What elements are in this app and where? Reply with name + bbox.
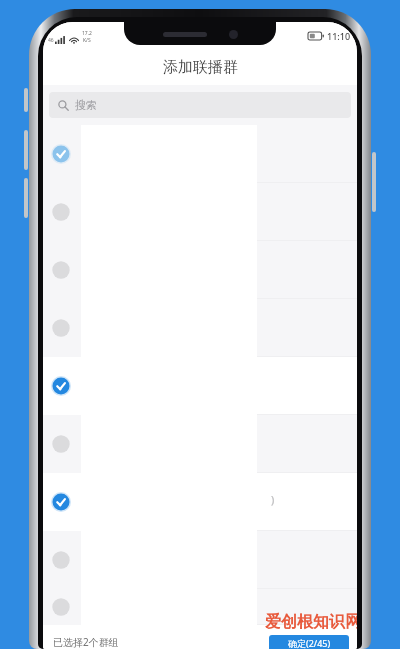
other: Selected group	[51, 376, 71, 396]
staticText: )	[271, 492, 275, 507]
staticText: 添加联播群	[163, 58, 238, 77]
staticText: 46	[48, 37, 54, 44]
other: Unselected group	[51, 318, 71, 338]
button[interactable]: 确定(2/45)	[269, 635, 349, 649]
button[interactable]: Unselected group	[43, 241, 357, 299]
button[interactable]: Unselected group	[43, 415, 357, 473]
button[interactable]: Selected group	[43, 125, 357, 183]
other: Unselected group	[51, 202, 71, 222]
staticText: K/S	[83, 37, 91, 44]
button[interactable]: Selected group	[43, 357, 357, 415]
other: Unselected group	[51, 260, 71, 280]
button[interactable]: Unselected group	[43, 531, 357, 589]
other: Unselected group	[51, 550, 71, 570]
staticText: 17.2	[82, 30, 92, 37]
button[interactable]: Unselected group	[43, 589, 357, 625]
staticText: 搜索	[75, 98, 97, 112]
button[interactable]: Unselected group	[43, 299, 357, 357]
staticText: 爱创根知识网	[265, 612, 357, 632]
other: Unselected group	[51, 597, 71, 617]
other: Selected group	[51, 492, 71, 512]
staticText: 确定(2/45)	[288, 637, 331, 649]
button[interactable]: Selected group	[43, 473, 357, 531]
staticText: 已选择2个群组	[53, 635, 119, 649]
other: Unselected group	[51, 434, 71, 454]
other: Selected group	[51, 144, 71, 164]
button[interactable]: 搜索	[49, 92, 351, 118]
staticText: 11:10	[327, 30, 351, 42]
button[interactable]: Unselected group	[43, 183, 357, 241]
